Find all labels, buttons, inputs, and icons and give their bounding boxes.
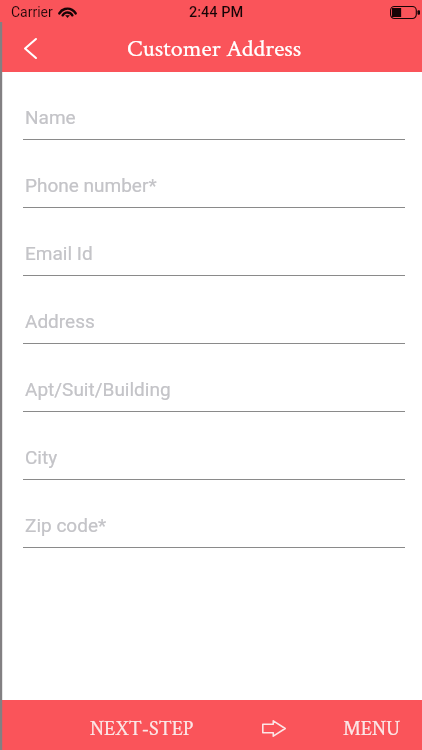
staticText: MENU — [343, 716, 401, 742]
button[interactable]: Zip code* — [0, 480, 422, 548]
staticText: Zip code* — [25, 514, 107, 536]
button[interactable]: Name — [0, 72, 422, 140]
button[interactable]: Phone number* — [0, 140, 422, 208]
button[interactable]: Back — [8, 26, 52, 70]
staticText: Name — [25, 106, 76, 128]
button[interactable]: City — [0, 412, 422, 480]
button[interactable]: Next step — [252, 703, 296, 750]
button[interactable]: Apt/Suit/Building — [0, 344, 422, 412]
staticText: Address — [25, 310, 95, 332]
button[interactable]: NEXT-STEP — [67, 704, 217, 750]
staticText: Apt/Suit/Building — [25, 378, 171, 400]
staticText: Customer Address — [127, 33, 302, 64]
staticText: Email Id — [25, 242, 93, 264]
staticText: 2:44 PM — [189, 4, 244, 21]
staticText: Phone number* — [25, 174, 157, 196]
button[interactable]: MENU — [322, 704, 422, 750]
staticText: Carrier — [11, 4, 53, 20]
staticText: NEXT-STEP — [90, 716, 194, 742]
button[interactable]: Email Id — [0, 208, 422, 276]
staticText: City — [25, 446, 58, 468]
button[interactable]: Address — [0, 276, 422, 344]
